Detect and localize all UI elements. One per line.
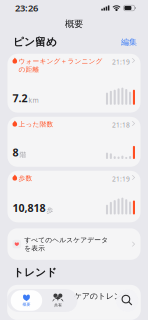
staticText: 概要 bbox=[22, 302, 30, 307]
staticText: 21:18 bbox=[112, 121, 130, 129]
button[interactable]: 検索 bbox=[116, 289, 138, 312]
staticText: 23:26 bbox=[15, 2, 38, 14]
staticText: ピン留め bbox=[13, 35, 57, 48]
staticText: 歩数 bbox=[18, 174, 32, 182]
staticText: 歩 bbox=[46, 206, 53, 214]
button[interactable]: 歩数 bbox=[7, 171, 140, 222]
staticText: 上った階数 bbox=[18, 120, 53, 128]
staticText: km bbox=[28, 96, 38, 105]
button[interactable]: 編集 bbox=[121, 37, 137, 47]
button[interactable]: すべてのヘルスケアデータ を表示 bbox=[7, 228, 140, 260]
button[interactable]: 概要 bbox=[11, 290, 42, 311]
staticText: 21:19 bbox=[112, 175, 130, 183]
staticText: 共有 bbox=[54, 303, 62, 308]
staticText: 編集 bbox=[121, 37, 137, 47]
staticText: すべてのヘルスケアデータ を表示 bbox=[24, 236, 108, 252]
button[interactable]: 上った階数 bbox=[7, 117, 140, 167]
staticText: 8 bbox=[12, 145, 18, 159]
staticText: ケアのトレンド bbox=[74, 291, 130, 301]
staticText: 階 bbox=[19, 151, 26, 159]
staticText: 21:19 bbox=[112, 58, 130, 66]
staticText: トレンド bbox=[13, 266, 57, 279]
staticText: ウォーキング＋ランニングの距離 bbox=[18, 57, 102, 74]
staticText: 10,818 bbox=[12, 201, 45, 215]
staticText: 概要 bbox=[65, 18, 83, 30]
staticText: 7.2 bbox=[12, 91, 27, 105]
button[interactable]: ウォーキング＋ランニングの距離 bbox=[7, 54, 140, 113]
button[interactable]: 共有 bbox=[42, 290, 74, 311]
